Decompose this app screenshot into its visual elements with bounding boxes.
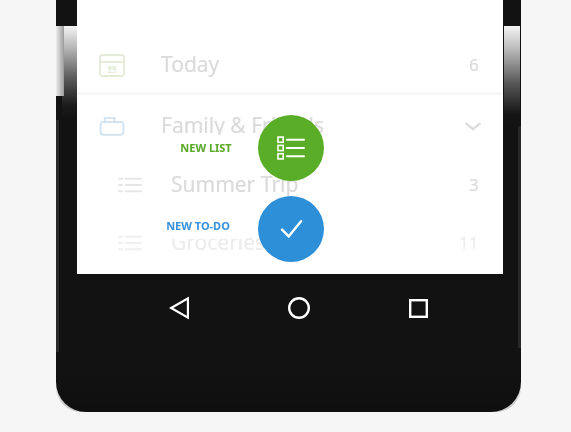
staticText: Today [161, 50, 220, 79]
button[interactable]: Family & Friends [77, 95, 503, 155]
button[interactable]: NEW LIST [168, 135, 244, 160]
staticText: 6 [469, 53, 479, 76]
staticText: 3 [469, 173, 479, 196]
button[interactable]: New list [258, 115, 324, 181]
button[interactable]: 25 [77, 36, 503, 92]
staticText: Summer Trip [171, 170, 299, 199]
button[interactable]: Summer Trip [77, 155, 503, 213]
staticText: Groceries [171, 228, 266, 257]
button[interactable]: Recent apps [398, 288, 438, 328]
staticText: Family & Friends [161, 111, 324, 140]
staticText: NEW TO-DO [166, 218, 230, 233]
button[interactable]: Home [279, 288, 319, 328]
button[interactable]: NEW TO-DO [152, 212, 244, 239]
staticText: NEW LIST [180, 140, 232, 155]
staticText: 11 [459, 231, 479, 254]
button[interactable]: Back [160, 288, 200, 328]
staticText: 25 [107, 64, 117, 75]
button[interactable]: New to-do [258, 196, 324, 262]
button[interactable]: Groceries [77, 213, 503, 271]
